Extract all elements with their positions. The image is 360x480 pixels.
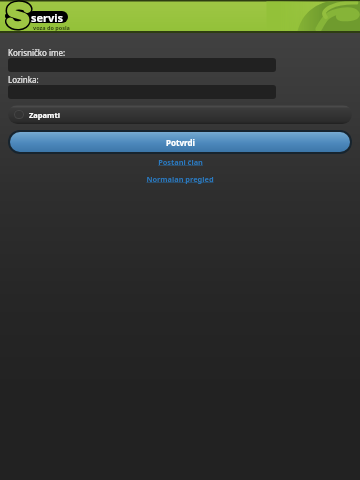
staticText: Potvrdi — [166, 137, 195, 148]
staticText: voza do posla — [33, 24, 70, 31]
staticText: servis — [31, 11, 64, 22]
staticText: Lozinka: — [8, 74, 39, 85]
button[interactable]: Normalan pregled — [146, 174, 214, 184]
button[interactable]: Zapamti — [8, 105, 352, 124]
staticText: Zapamti — [29, 110, 60, 120]
button[interactable]: Postani član — [158, 157, 203, 167]
staticText: Korisničko ime: — [8, 47, 66, 58]
button[interactable]: Potvrdi — [10, 132, 350, 152]
